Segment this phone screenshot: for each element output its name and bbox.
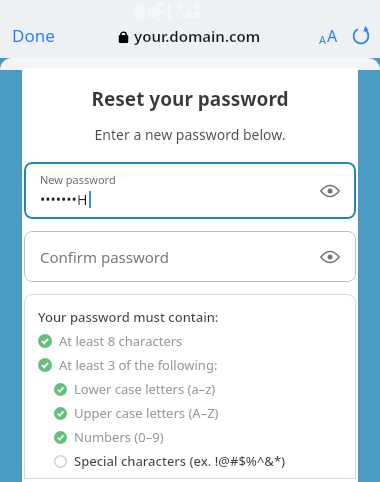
button[interactable]: Reload <box>350 23 380 49</box>
staticText: Done <box>12 24 55 47</box>
staticText: Confirm password <box>40 247 169 267</box>
button[interactable]: Done <box>0 20 67 51</box>
button[interactable]: Show new password <box>316 177 344 205</box>
staticText: At least 3 of the following: <box>59 356 218 374</box>
staticText: Special characters (ex. !@#$%^&*) <box>74 452 286 470</box>
staticText: A <box>319 32 327 47</box>
staticText: Upper case letters (A–Z) <box>74 404 219 422</box>
staticText: Your password must contain: <box>38 308 219 326</box>
button[interactable]: Confirm password <box>24 231 356 282</box>
staticText: Lower case letters (a–z) <box>74 380 216 398</box>
staticText: A <box>327 25 338 47</box>
staticText: Enter a new password below. <box>22 125 358 144</box>
staticText: Numbers (0–9) <box>74 428 164 446</box>
button[interactable]: New password <box>24 162 356 219</box>
staticText: At least 8 characters <box>59 332 183 350</box>
staticText: New password <box>40 172 116 187</box>
staticText: H <box>77 190 88 209</box>
staticText: Reset your password <box>22 86 358 112</box>
staticText: ••••••• <box>40 190 77 209</box>
button[interactable]: Show confirm password <box>316 243 344 271</box>
staticText: your.domain.com <box>134 26 261 46</box>
button[interactable]: Text size <box>313 21 344 51</box>
